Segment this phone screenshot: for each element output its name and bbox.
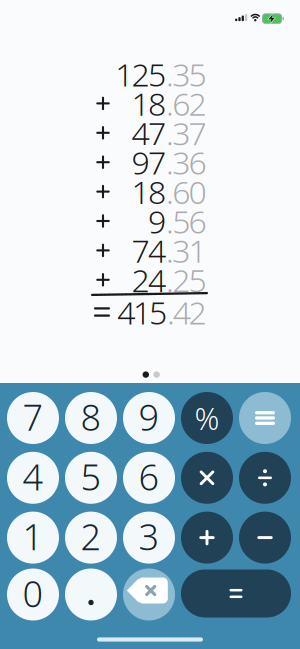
button[interactable]: 5 — [65, 452, 117, 504]
staticText: 5 — [80, 453, 101, 500]
staticText: .37 — [166, 112, 206, 154]
staticText: 1 — [22, 512, 43, 560]
button[interactable] — [65, 568, 117, 620]
staticText: 18 — [132, 82, 166, 125]
button[interactable] — [239, 452, 291, 504]
staticText: .35 — [166, 53, 206, 95]
staticText: .56 — [166, 200, 206, 242]
staticText: 97 — [132, 141, 166, 183]
button[interactable] — [239, 512, 291, 564]
button[interactable]: 9 — [123, 392, 175, 444]
staticText: 0 — [22, 569, 43, 617]
staticText: 7 — [22, 393, 43, 441]
button[interactable] — [123, 568, 175, 620]
staticText: .62 — [166, 82, 206, 125]
button[interactable]: 4 — [7, 452, 59, 504]
button[interactable]: 0 — [7, 568, 59, 620]
button[interactable]: 3 — [123, 512, 175, 564]
staticText: 8 — [80, 393, 101, 441]
staticText: 9 — [138, 393, 159, 441]
staticText: .60 — [166, 170, 206, 213]
button[interactable] — [181, 452, 233, 504]
staticText: .36 — [166, 141, 206, 183]
button[interactable]: 7 — [7, 392, 59, 444]
staticText: 3 — [138, 512, 159, 560]
staticText: 47 — [132, 112, 166, 154]
staticText: 6 — [138, 453, 159, 500]
staticText: 24 — [132, 259, 166, 301]
button[interactable] — [181, 569, 291, 617]
staticText: .25 — [166, 259, 206, 301]
staticText: .31 — [166, 229, 206, 272]
button[interactable]: 1 — [7, 512, 59, 564]
staticText: 4 — [22, 453, 43, 500]
staticText: % — [194, 398, 219, 438]
staticText: 74 — [132, 229, 166, 272]
button[interactable]: 8 — [65, 392, 117, 444]
staticText: .42 — [167, 291, 206, 333]
staticText: 18 — [132, 170, 166, 213]
staticText: 415 — [117, 291, 167, 333]
staticText: 9 — [148, 200, 166, 242]
staticText: 2 — [80, 512, 101, 560]
button[interactable] — [239, 392, 291, 444]
staticText: 125 — [115, 53, 166, 95]
button[interactable]: % — [181, 392, 233, 444]
button[interactable]: 6 — [123, 452, 175, 504]
button[interactable] — [181, 512, 233, 564]
button[interactable]: 2 — [65, 512, 117, 564]
